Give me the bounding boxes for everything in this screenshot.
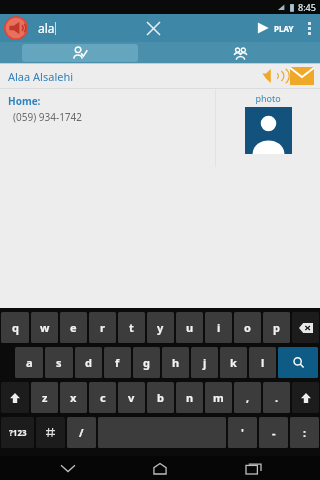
staticText: f xyxy=(115,355,120,370)
button[interactable]: b xyxy=(147,382,174,413)
staticText: l xyxy=(261,355,265,370)
button[interactable]: - xyxy=(259,417,288,448)
staticText: Alaa Alsalehi xyxy=(8,69,74,84)
staticText: w xyxy=(40,320,50,335)
button[interactable]: ?123 xyxy=(1,417,34,448)
staticText: k xyxy=(230,355,237,370)
button[interactable]: , xyxy=(234,382,261,413)
button[interactable]: j xyxy=(191,347,218,378)
button[interactable]: Recent apps xyxy=(228,456,278,480)
button[interactable]: f xyxy=(104,347,131,378)
staticText: s xyxy=(56,355,62,370)
button[interactable]: r xyxy=(89,312,116,343)
button[interactable]: o xyxy=(234,312,261,343)
button[interactable]: ' xyxy=(228,417,257,448)
button[interactable]: w xyxy=(31,312,58,343)
staticText: a xyxy=(26,355,33,370)
staticText: . xyxy=(275,390,279,405)
button[interactable]: u xyxy=(176,312,203,343)
staticText: h xyxy=(172,355,180,370)
button[interactable]: More options xyxy=(298,14,320,42)
button[interactable]: Alaa Alsalehi xyxy=(0,64,320,88)
button[interactable]: v xyxy=(118,382,145,413)
staticText: photo xyxy=(255,92,281,104)
button[interactable]: All contacts xyxy=(160,42,320,64)
button[interactable]: Send message xyxy=(288,64,316,88)
button[interactable]: Selected contacts xyxy=(22,44,138,62)
staticText: d xyxy=(85,355,92,370)
staticText: r xyxy=(100,320,105,335)
staticText: y xyxy=(157,320,164,335)
staticText: PLAY xyxy=(274,23,294,34)
staticText: ?123 xyxy=(9,427,27,438)
button[interactable]: h xyxy=(162,347,189,378)
button[interactable]: / xyxy=(67,417,96,448)
button[interactable]: y xyxy=(147,312,174,343)
button[interactable]: c xyxy=(89,382,116,413)
button[interactable]: Shift xyxy=(292,382,319,413)
button[interactable]: Clear xyxy=(138,14,168,42)
button[interactable]: i xyxy=(205,312,232,343)
button[interactable]: App logo xyxy=(4,16,28,40)
staticText: t xyxy=(129,320,134,335)
staticText: b xyxy=(157,390,164,405)
staticText: o xyxy=(244,320,251,335)
button[interactable]: Contact photo xyxy=(245,107,292,154)
button[interactable]: Shift xyxy=(1,382,29,413)
button[interactable]: Backspace xyxy=(292,312,319,343)
staticText: v xyxy=(128,390,135,405)
staticText: Home: xyxy=(8,94,41,108)
button[interactable]: z xyxy=(31,382,58,413)
button[interactable]: g xyxy=(133,347,160,378)
button[interactable]: k xyxy=(220,347,247,378)
staticText: , xyxy=(246,390,250,405)
button[interactable]: q xyxy=(1,312,29,343)
button[interactable]: . xyxy=(263,382,290,413)
button[interactable]: Back xyxy=(43,456,93,480)
button[interactable]: : xyxy=(290,417,319,448)
staticText: z xyxy=(42,390,48,405)
button[interactable]: Home xyxy=(135,456,185,480)
button[interactable]: Symbols xyxy=(36,417,65,448)
button[interactable]: Play name xyxy=(258,65,288,87)
staticText: 8:45 xyxy=(298,1,316,13)
staticText: i xyxy=(217,320,221,335)
button[interactable]: t xyxy=(118,312,145,343)
staticText: / xyxy=(79,425,84,440)
button[interactable]: x xyxy=(60,382,87,413)
button[interactable]: l xyxy=(249,347,276,378)
staticText: c xyxy=(100,390,106,405)
button[interactable]: PLAY xyxy=(251,16,298,40)
staticText: e xyxy=(70,320,77,335)
staticText: x xyxy=(70,390,77,405)
staticText: ' xyxy=(241,425,244,440)
staticText: : xyxy=(303,425,307,440)
staticText: q xyxy=(12,320,19,335)
staticText: m xyxy=(213,390,224,405)
button[interactable]: s xyxy=(45,347,73,378)
staticText: g xyxy=(143,355,150,370)
staticText: - xyxy=(272,425,276,440)
staticText: n xyxy=(186,390,194,405)
button[interactable]: Search xyxy=(278,347,318,378)
staticText: p xyxy=(273,320,280,335)
staticText: u xyxy=(186,320,194,335)
button[interactable]: p xyxy=(263,312,290,343)
button[interactable]: d xyxy=(75,347,102,378)
button[interactable]: m xyxy=(205,382,232,413)
button[interactable]: e xyxy=(60,312,87,343)
button[interactable]: n xyxy=(176,382,203,413)
staticText: (059) 934-1742 xyxy=(13,110,83,124)
staticText: ala xyxy=(38,20,55,36)
staticText: j xyxy=(203,355,207,370)
button[interactable]: a xyxy=(15,347,43,378)
